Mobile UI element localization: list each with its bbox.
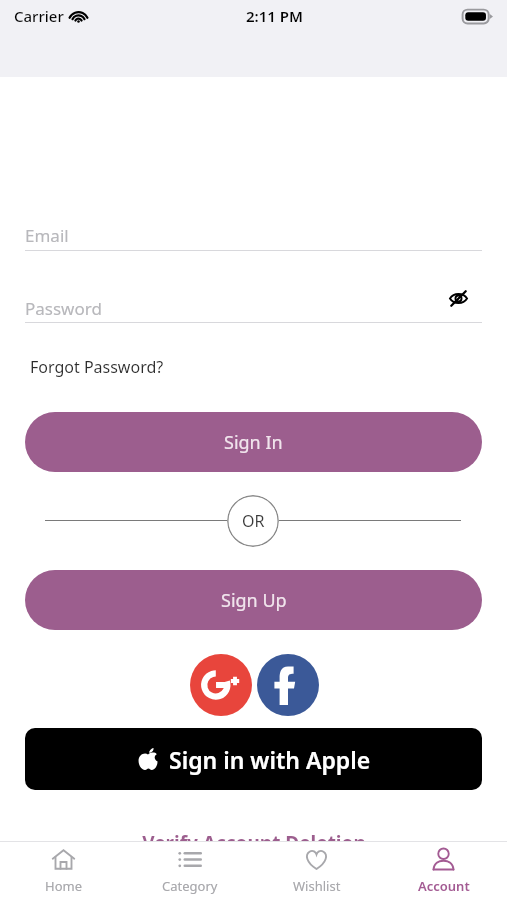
button[interactable]: Category	[126, 842, 253, 900]
staticText: Email	[25, 224, 69, 247]
button[interactable]: Sign in with Facebook	[257, 654, 319, 716]
button[interactable]: Sign Up	[25, 570, 482, 630]
staticText: 2:11 PM	[246, 6, 303, 26]
button[interactable]: Sign In	[25, 412, 482, 472]
button[interactable]: Sign in with Apple	[25, 728, 482, 790]
button[interactable]: Wishlist	[253, 842, 380, 900]
staticText: Category	[162, 877, 218, 895]
staticText: Verify Account Deletion	[142, 830, 366, 841]
button[interactable]: Sign in with Google	[190, 654, 252, 716]
button[interactable]: Account	[380, 842, 507, 900]
staticText: Sign in with Apple	[169, 744, 371, 775]
button[interactable]: Password	[25, 293, 482, 324]
staticText: Sign In	[224, 430, 283, 455]
staticText: Account	[418, 877, 470, 895]
staticText: Carrier	[14, 6, 64, 26]
staticText: Forgot Password?	[30, 356, 164, 378]
staticText: Password	[25, 297, 102, 320]
staticText: OR	[242, 510, 265, 532]
staticText: Home	[45, 877, 82, 895]
staticText: Wishlist	[293, 877, 341, 895]
staticText: Sign Up	[221, 588, 287, 613]
button[interactable]: Forgot Password?	[30, 353, 164, 381]
button[interactable]: Show password	[442, 282, 474, 314]
button[interactable]: Verify Account Deletion	[0, 830, 507, 841]
button[interactable]: Email	[25, 220, 482, 251]
button[interactable]: Home	[0, 842, 126, 900]
